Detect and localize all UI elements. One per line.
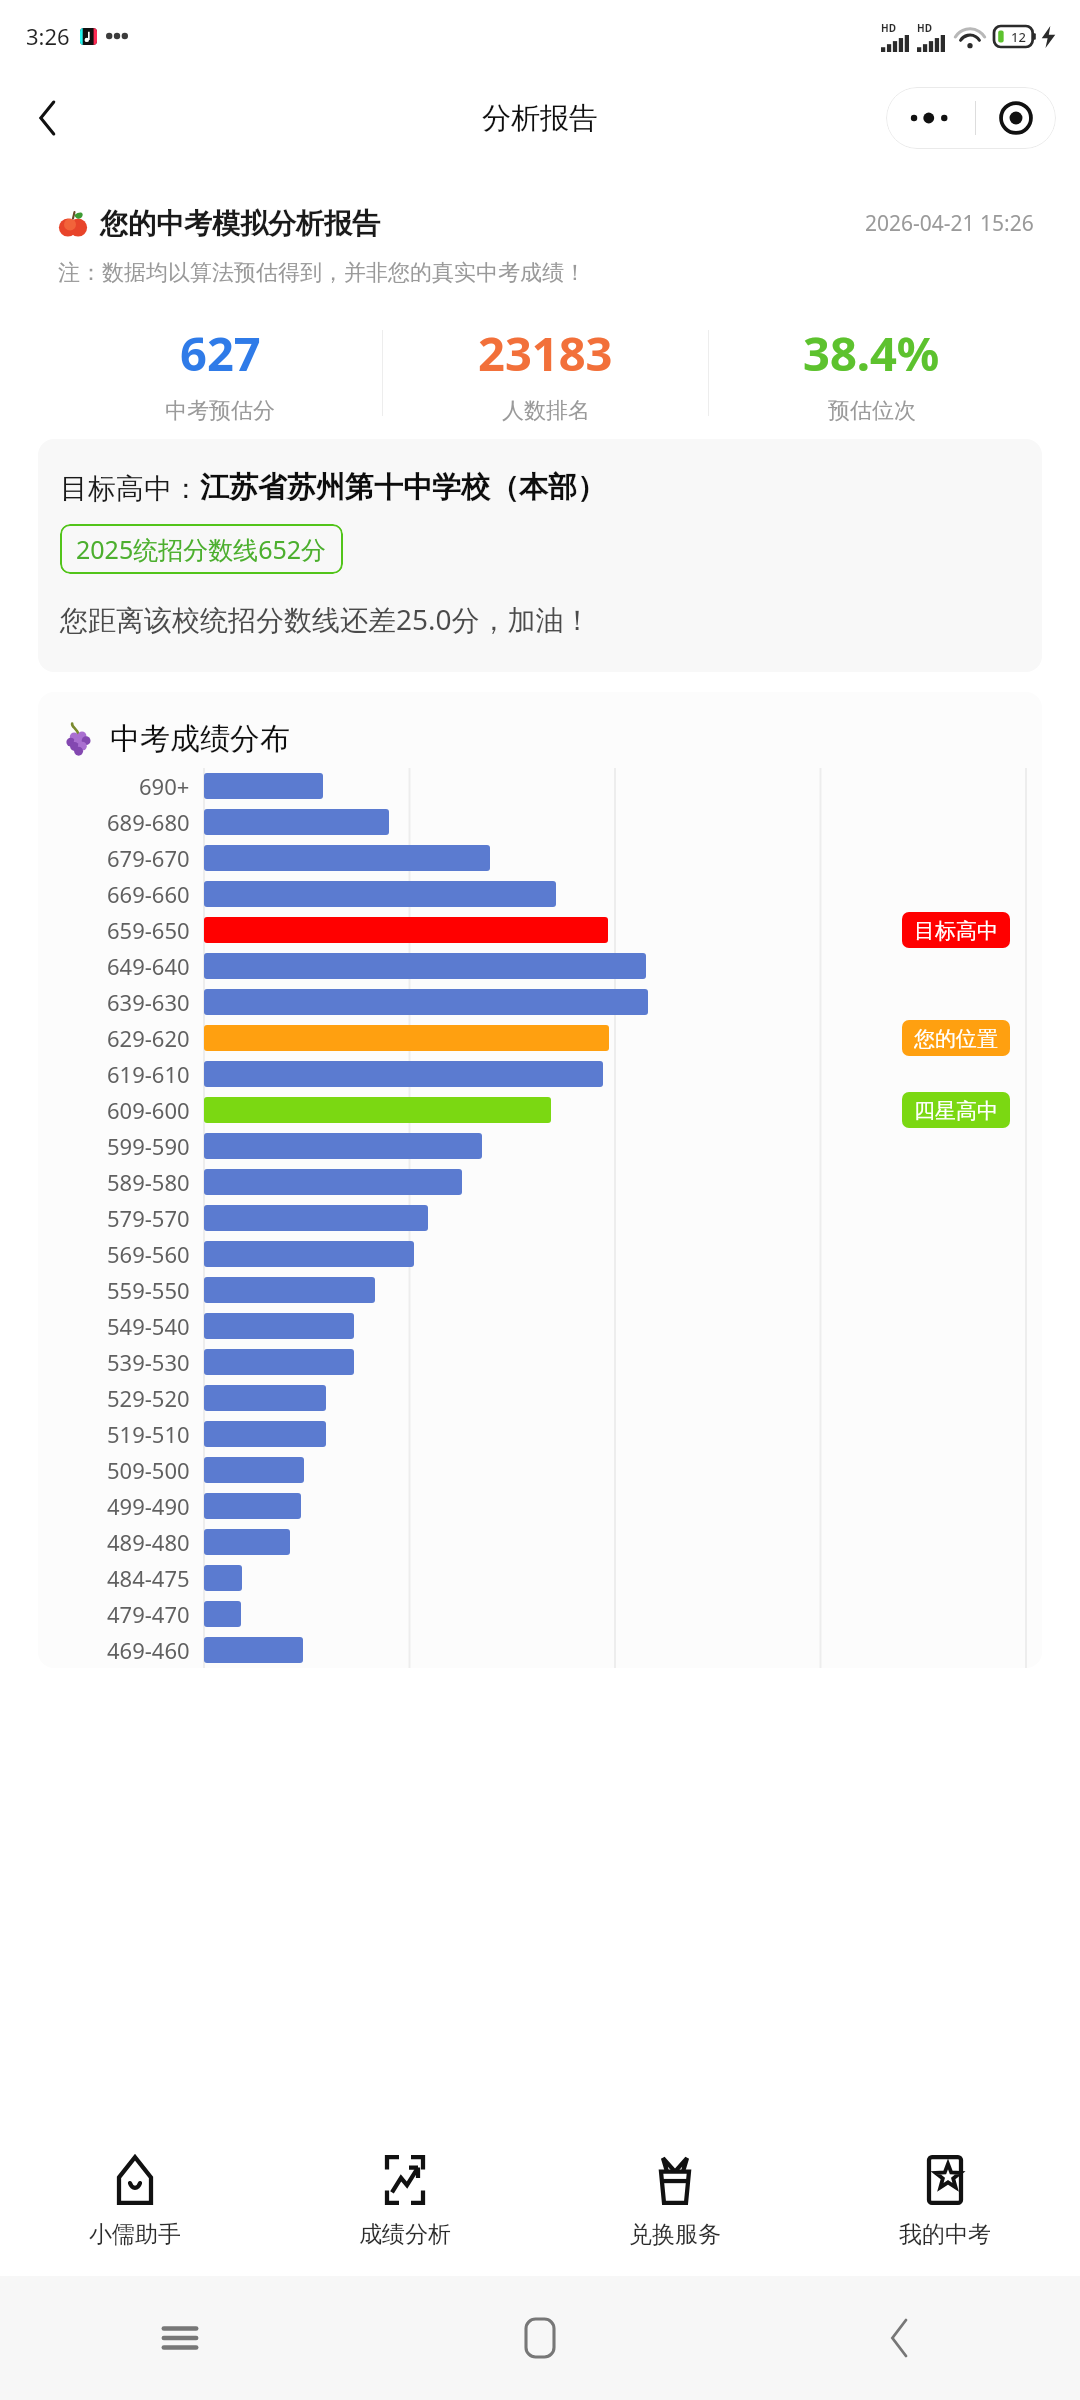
staticText: 成绩分析 bbox=[359, 2220, 451, 2249]
staticText: 627 bbox=[180, 321, 261, 385]
staticText: HD bbox=[881, 21, 896, 35]
staticText: 629-620 bbox=[107, 1023, 190, 1053]
staticText: 目标高中： bbox=[60, 471, 200, 506]
staticText: 小儒助手 bbox=[89, 2220, 181, 2249]
button[interactable]: Recents bbox=[0, 2276, 360, 2400]
button[interactable]: Home bbox=[360, 2276, 720, 2400]
staticText: 669-660 bbox=[107, 879, 190, 909]
staticText: 2025统招分数线652分 bbox=[76, 532, 327, 566]
staticText: 中考成绩分布 bbox=[110, 720, 290, 758]
staticText: 599-590 bbox=[107, 1131, 190, 1161]
staticText: 589-580 bbox=[107, 1167, 190, 1197]
staticText: 609-600 bbox=[107, 1095, 190, 1125]
button[interactable]: 2025统招分数线652分 bbox=[60, 524, 343, 574]
staticText: 484-475 bbox=[107, 1563, 190, 1593]
staticText: 689-680 bbox=[107, 807, 190, 837]
staticText: 预估位次 bbox=[828, 397, 916, 425]
button[interactable]: 我的中考 bbox=[810, 2126, 1080, 2276]
staticText: 509-500 bbox=[107, 1455, 190, 1485]
staticText: 649-640 bbox=[107, 951, 190, 981]
staticText: 690+ bbox=[139, 771, 190, 801]
staticText: 549-540 bbox=[107, 1311, 190, 1341]
staticText: 639-630 bbox=[107, 987, 190, 1017]
staticText: 2026-04-21 15:26 bbox=[865, 209, 1034, 238]
staticText: 四星高中 bbox=[914, 1098, 998, 1122]
staticText: 559-550 bbox=[107, 1275, 190, 1305]
staticText: 分析报告 bbox=[482, 100, 598, 137]
staticText: 519-510 bbox=[107, 1419, 190, 1449]
staticText: 23183 bbox=[478, 321, 613, 385]
staticText: 529-520 bbox=[107, 1383, 190, 1413]
staticText: 中考预估分 bbox=[165, 397, 275, 425]
button[interactable]: 兑换服务 bbox=[540, 2126, 810, 2276]
staticText: 659-650 bbox=[107, 915, 190, 945]
button[interactable]: 小儒助手 bbox=[0, 2126, 270, 2276]
staticText: 539-530 bbox=[107, 1347, 190, 1377]
staticText: 注：数据均以算法预估得到，并非您的真实中考成绩！ bbox=[58, 259, 586, 287]
staticText: 499-490 bbox=[107, 1491, 190, 1521]
staticText: 579-570 bbox=[107, 1203, 190, 1233]
staticText: 我的中考 bbox=[899, 2220, 991, 2249]
staticText: 619-610 bbox=[107, 1059, 190, 1089]
button[interactable]: 23183 bbox=[383, 321, 708, 425]
staticText: 3:26 bbox=[26, 21, 70, 51]
staticText: 479-470 bbox=[107, 1599, 190, 1629]
staticText: 12 bbox=[1011, 28, 1026, 46]
button[interactable]: 38.4% bbox=[709, 321, 1034, 425]
button[interactable]: 目标高中 bbox=[902, 912, 1010, 948]
staticText: 您距离该校统招分数线还差25.0分，加油！ bbox=[60, 600, 592, 638]
staticText: 人数排名 bbox=[502, 397, 590, 425]
staticText: 679-670 bbox=[107, 843, 190, 873]
button[interactable]: Menu and close bbox=[886, 87, 1056, 149]
button[interactable]: 四星高中 bbox=[902, 1092, 1010, 1128]
staticText: 38.4% bbox=[803, 321, 940, 385]
staticText: 489-480 bbox=[107, 1527, 190, 1557]
button[interactable]: Back bbox=[20, 90, 76, 146]
staticText: 您的位置 bbox=[914, 1026, 998, 1050]
staticText: 469-460 bbox=[107, 1635, 190, 1665]
staticText: 569-560 bbox=[107, 1239, 190, 1269]
staticText: HD bbox=[917, 21, 932, 35]
button[interactable]: Back bbox=[720, 2276, 1080, 2400]
button[interactable]: 成绩分析 bbox=[270, 2126, 540, 2276]
staticText: 您的中考模拟分析报告 bbox=[100, 206, 380, 241]
button[interactable]: 您的位置 bbox=[902, 1020, 1010, 1056]
staticText: 目标高中 bbox=[914, 918, 998, 942]
staticText: 兑换服务 bbox=[629, 2220, 721, 2249]
staticText: 江苏省苏州第十中学校（本部） bbox=[200, 469, 606, 506]
button[interactable]: 627 bbox=[58, 321, 382, 425]
button[interactable]: 目标高中： bbox=[38, 439, 1042, 672]
